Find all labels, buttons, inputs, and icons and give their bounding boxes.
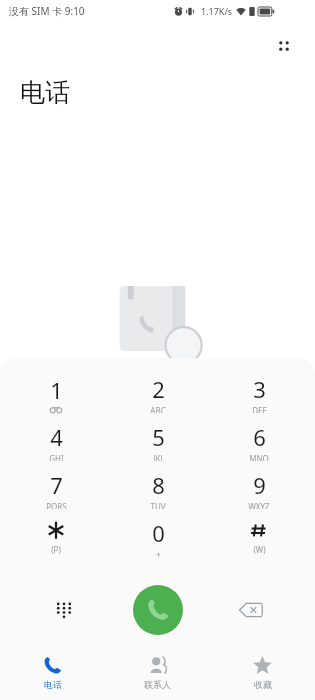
button[interactable]: 5 bbox=[112, 422, 204, 461]
staticText: PQRS bbox=[46, 501, 67, 509]
button[interactable]: 0 bbox=[112, 518, 204, 557]
staticText: TUV bbox=[150, 501, 166, 509]
staticText: 8 bbox=[152, 470, 165, 500]
staticText: MNO bbox=[249, 453, 269, 461]
button[interactable]: Call bbox=[133, 585, 183, 635]
button[interactable]: Hide keypad bbox=[42, 588, 86, 632]
button[interactable]: 电话 bbox=[0, 646, 105, 700]
staticText: + bbox=[156, 549, 161, 557]
button[interactable]: Delete bbox=[229, 588, 273, 632]
staticText: 6 bbox=[253, 422, 266, 452]
staticText: 电话 bbox=[20, 77, 70, 108]
button[interactable]: 联系人 bbox=[105, 646, 210, 700]
staticText: 2 bbox=[152, 374, 165, 404]
staticText: 电话 bbox=[44, 679, 62, 690]
staticText: 9 bbox=[253, 470, 266, 500]
staticText: 0 bbox=[152, 518, 165, 548]
staticText: ABC bbox=[150, 405, 166, 413]
staticText: WXYZ bbox=[248, 501, 270, 509]
button[interactable]: 4 bbox=[10, 422, 102, 461]
staticText: 3 bbox=[253, 374, 266, 404]
staticText: 联系人 bbox=[144, 679, 171, 690]
staticText: 没有 SIM 卡 9:10 bbox=[9, 4, 85, 18]
button[interactable]: 7 bbox=[10, 470, 102, 509]
button[interactable]: (P) bbox=[10, 518, 102, 557]
staticText: 7 bbox=[50, 470, 63, 500]
button[interactable]: (W) bbox=[213, 518, 305, 557]
button[interactable]: 2 bbox=[112, 374, 204, 413]
staticText: 1.17K/s bbox=[201, 5, 233, 17]
button[interactable]: 收藏 bbox=[210, 646, 315, 700]
button[interactable]: 1 bbox=[10, 374, 102, 413]
staticText: JKL bbox=[153, 453, 165, 461]
staticText: 收藏 bbox=[254, 679, 272, 690]
staticText: (P) bbox=[51, 544, 61, 555]
staticText: 5 bbox=[152, 422, 165, 452]
staticText: 4 bbox=[50, 422, 63, 452]
staticText: DEF bbox=[252, 405, 267, 413]
button[interactable]: 8 bbox=[112, 470, 204, 509]
staticText: GHI bbox=[49, 453, 64, 461]
button[interactable]: 9 bbox=[213, 470, 305, 509]
button[interactable]: More options bbox=[266, 28, 302, 64]
staticText: (W) bbox=[253, 544, 266, 555]
staticText: 1 bbox=[50, 375, 63, 405]
button[interactable]: 3 bbox=[213, 374, 305, 413]
button[interactable]: 6 bbox=[213, 422, 305, 461]
